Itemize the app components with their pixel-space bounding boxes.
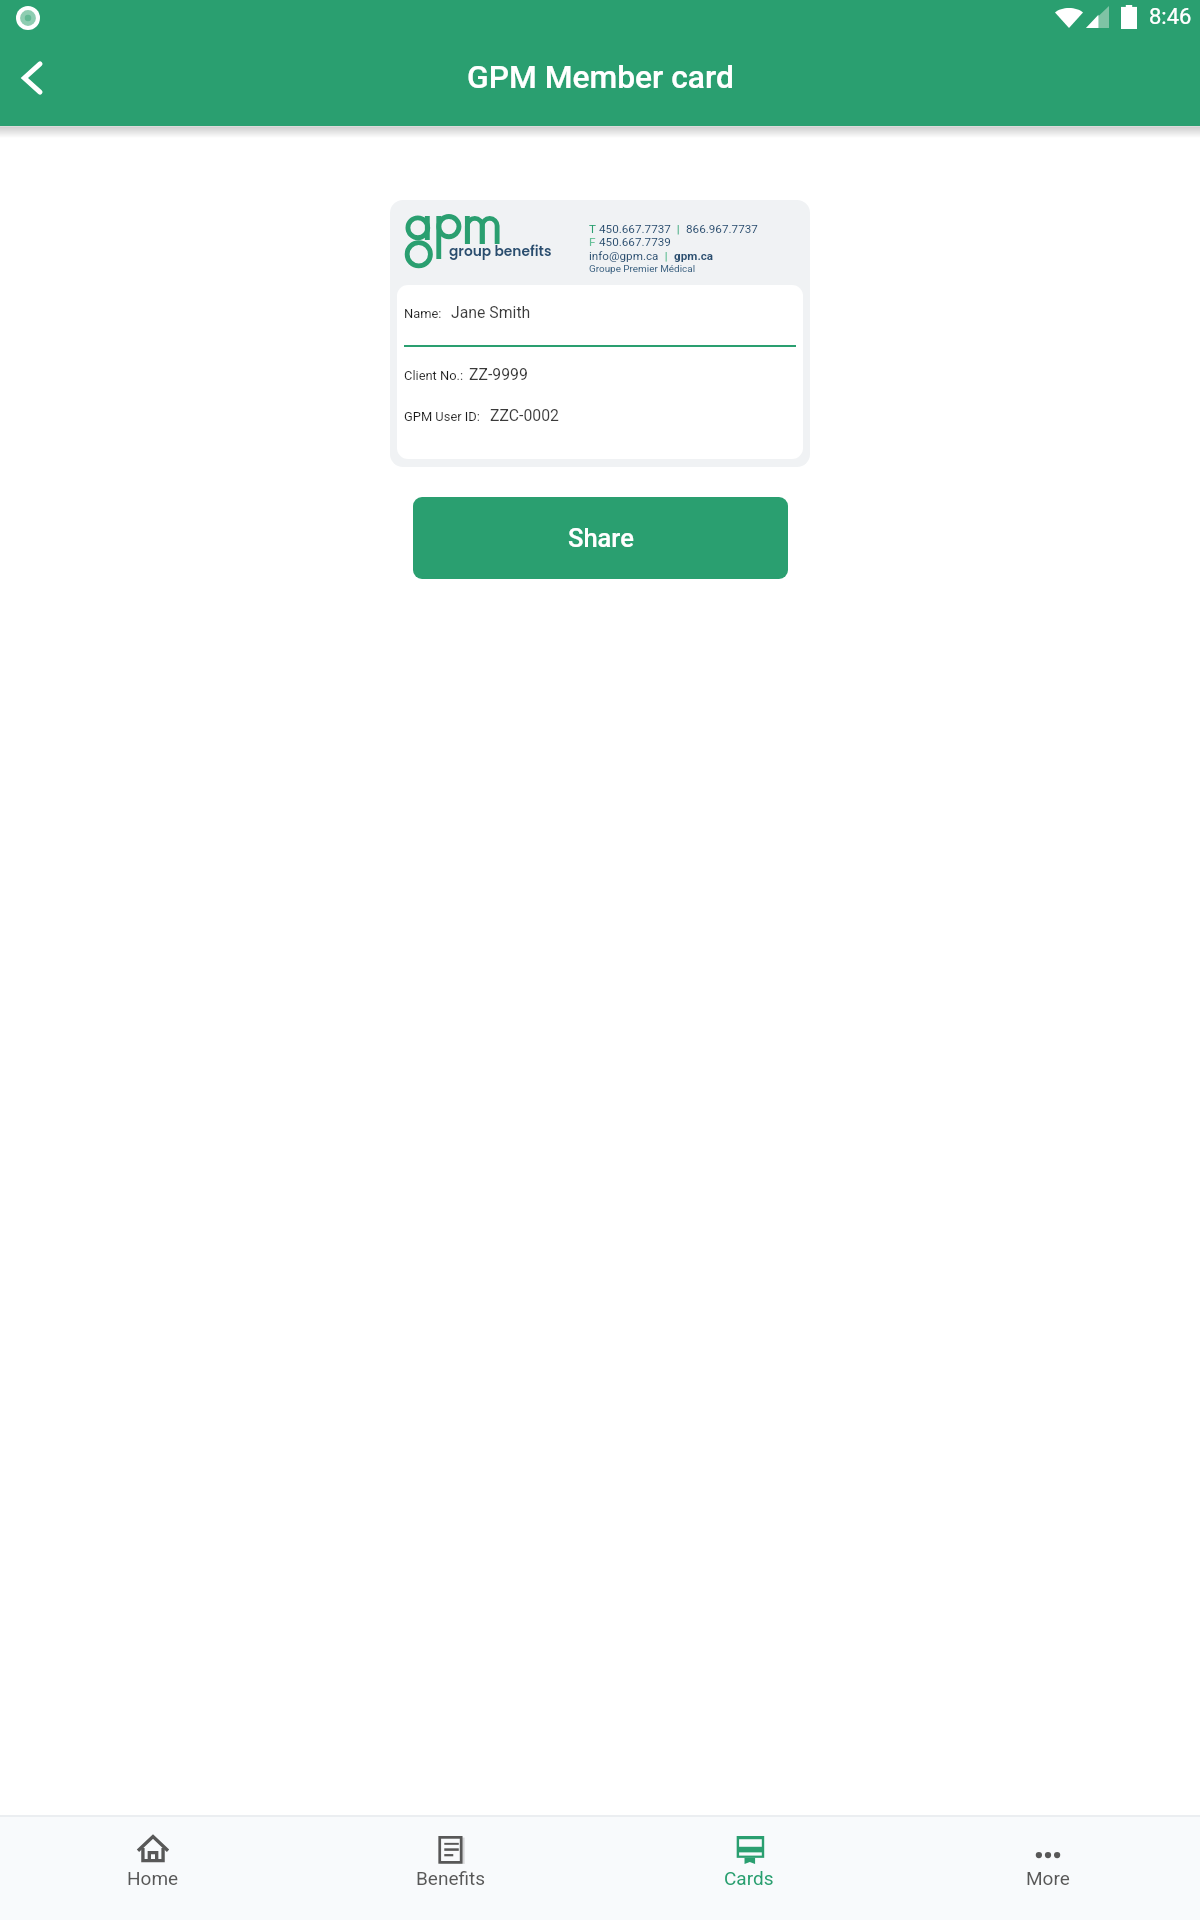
button[interactable]: Benefits [300, 1817, 600, 1920]
staticText: info@gpm.ca [589, 249, 659, 263]
button[interactable]: Home [0, 1817, 300, 1920]
staticText: ZZC-0002 [490, 406, 559, 425]
staticText: ZZ-9999 [469, 365, 528, 384]
staticText: 450.667.7737 [599, 222, 671, 236]
staticText: GPM User ID: [404, 409, 480, 424]
button[interactable]: Back [0, 46, 64, 110]
staticText: GPM Member card [467, 58, 734, 95]
staticText: Client No.: [404, 368, 464, 383]
staticText: More [1026, 1867, 1070, 1889]
staticText: Share [568, 523, 634, 553]
staticText: 866.967.7737 [686, 222, 758, 236]
staticText: T [589, 222, 599, 236]
staticText: 450.667.7739 [599, 235, 671, 249]
staticText: | [671, 222, 686, 236]
staticText: Name: [404, 306, 442, 321]
staticText: Benefits [416, 1867, 486, 1889]
button[interactable]: Cards [600, 1817, 900, 1920]
staticText: F [589, 235, 599, 249]
staticText: Home [127, 1867, 179, 1889]
button[interactable]: Share [413, 497, 788, 579]
staticText: 8:46 [1149, 4, 1192, 30]
staticText: Jane Smith [451, 303, 531, 322]
staticText: Cards [724, 1867, 774, 1889]
staticText: Groupe Premier Médical [589, 263, 696, 275]
button[interactable]: More [900, 1817, 1200, 1920]
staticText: group benefits [449, 242, 552, 261]
staticText: gpm.ca [674, 249, 714, 263]
staticText: | [659, 249, 674, 263]
